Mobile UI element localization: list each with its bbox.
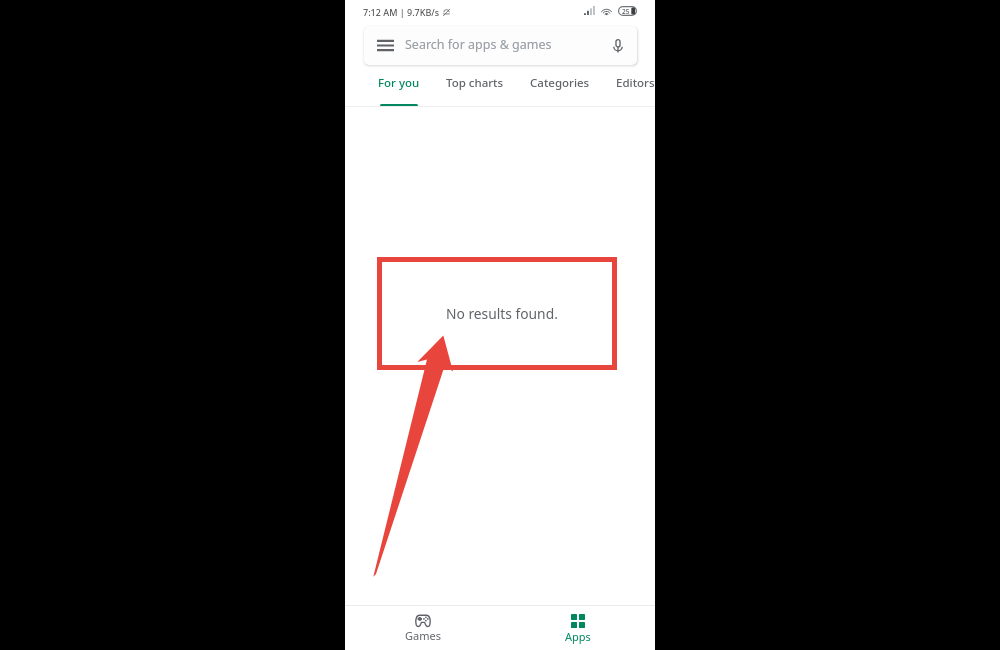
staticText: Apps [565, 629, 591, 644]
staticText: Editors' choice [616, 75, 655, 91]
staticText: Search for apps & games [405, 36, 552, 53]
button[interactable]: For you [378, 68, 420, 107]
staticText: Top charts [446, 75, 504, 91]
staticText: 25 [622, 7, 630, 16]
staticText: No results found. [446, 304, 558, 323]
button[interactable]: Open navigation menu [364, 26, 637, 65]
button[interactable]: Categories [530, 68, 590, 107]
button[interactable]: Top charts [446, 68, 504, 107]
staticText: For you [378, 75, 420, 91]
staticText: Categories [530, 75, 590, 91]
staticText: Games [405, 628, 441, 643]
button[interactable]: Games [345, 606, 500, 650]
button[interactable]: Editors' choice [616, 68, 655, 107]
staticText: 7:12 AM | 9.7KB/s [363, 6, 440, 18]
button[interactable]: Open navigation menu [377, 39, 394, 52]
button[interactable]: Apps [500, 606, 655, 650]
button[interactable]: Voice search [611, 38, 625, 54]
